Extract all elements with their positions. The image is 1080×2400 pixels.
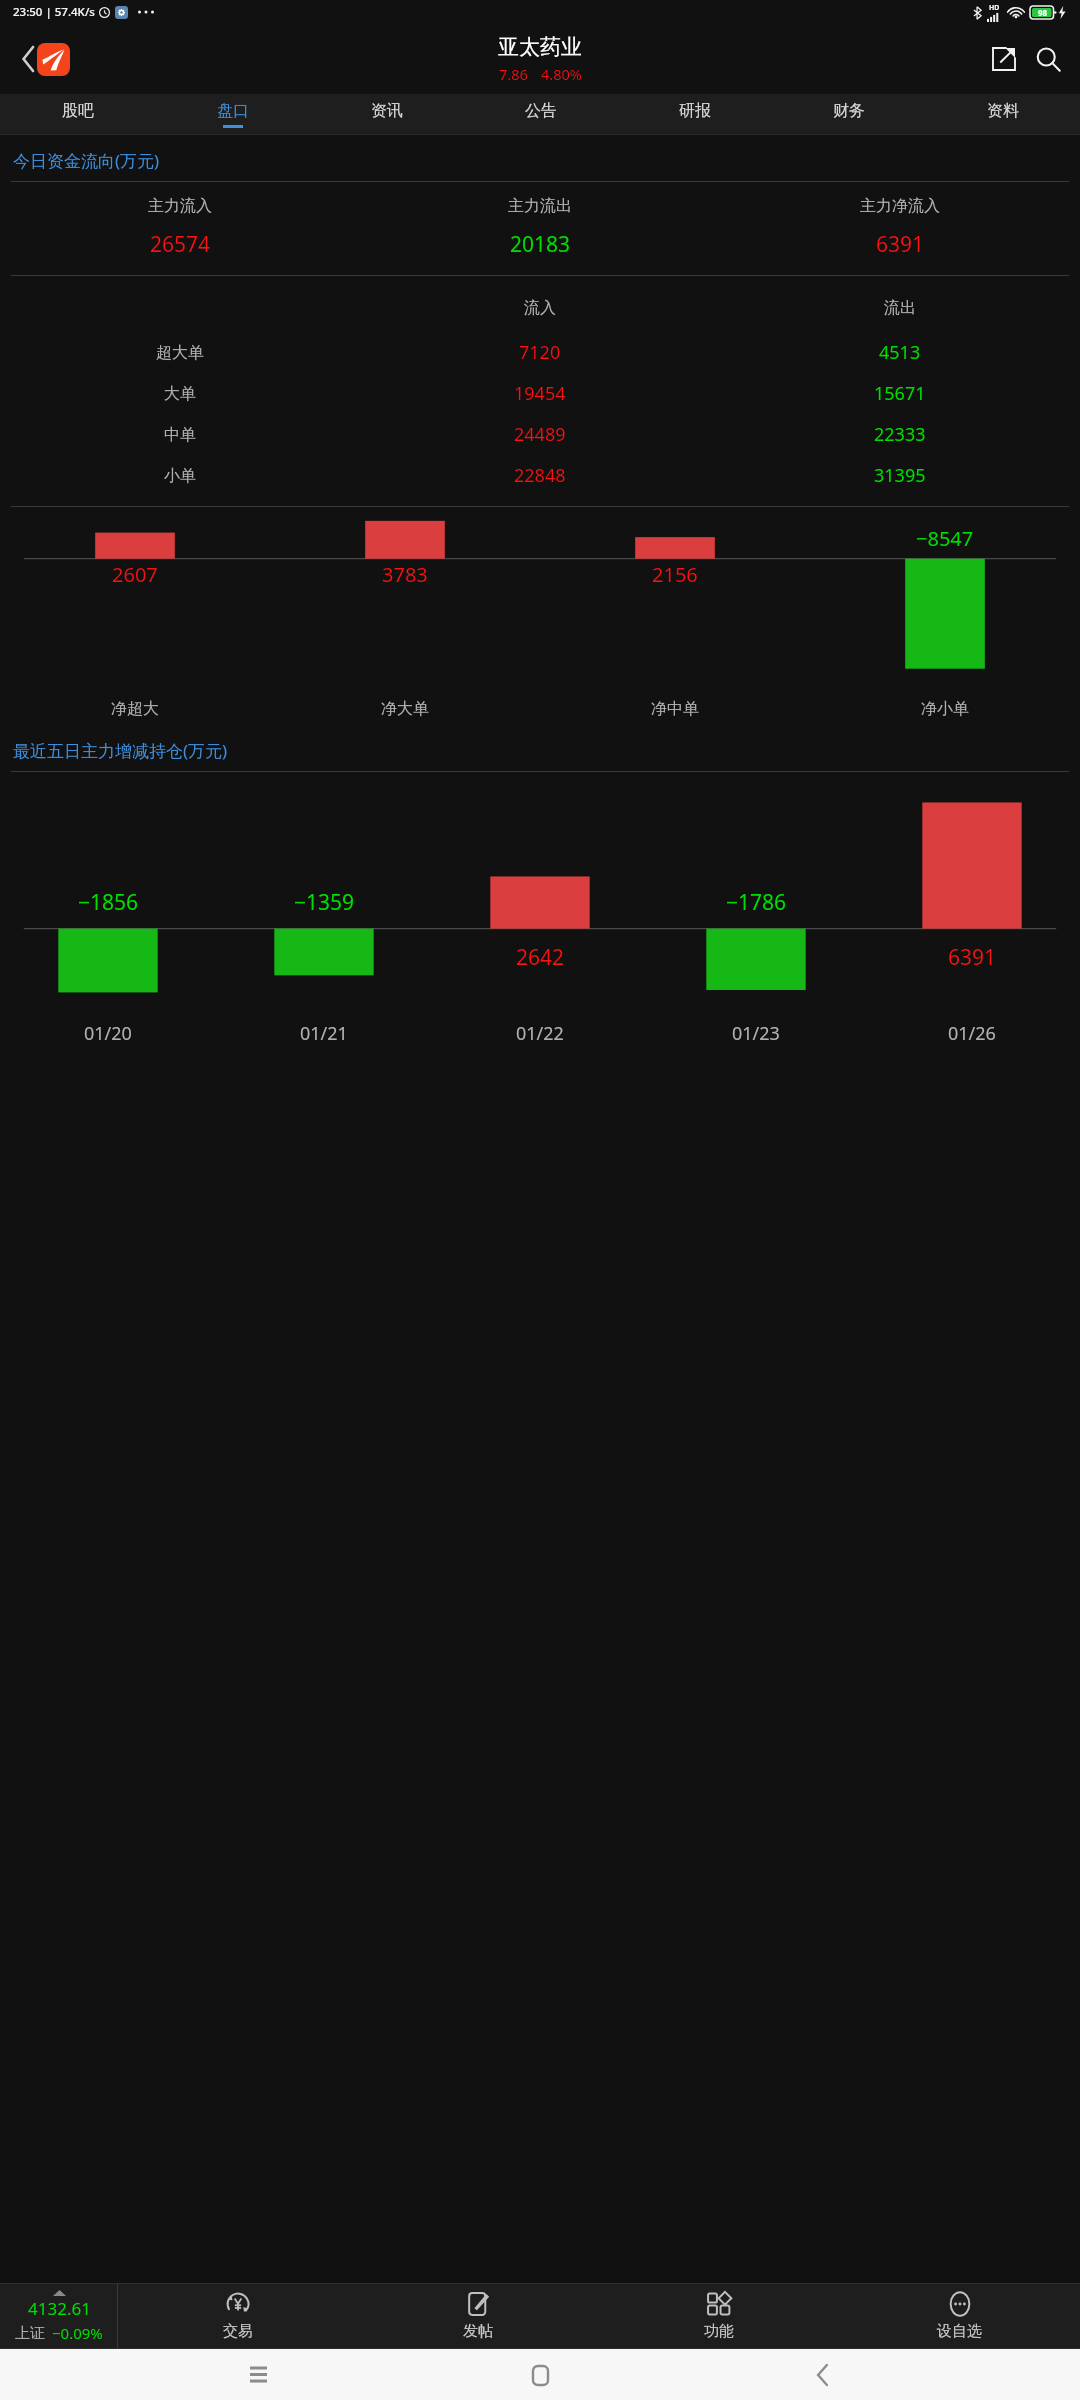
- staticText: 流出: [884, 298, 916, 318]
- button[interactable]: Back: [798, 2351, 846, 2399]
- button[interactable]: 发帖: [358, 2284, 598, 2348]
- staticText: 主力净流入: [860, 196, 940, 216]
- staticText: −1856: [78, 888, 139, 917]
- staticText: 15671: [874, 381, 926, 406]
- button[interactable]: 研报: [618, 94, 772, 134]
- staticText: 3783: [382, 561, 428, 588]
- staticText: 超大单: [156, 343, 204, 363]
- staticText: 01/21: [300, 1021, 348, 1046]
- staticText: 净大单: [381, 699, 429, 719]
- staticText: 净中单: [651, 699, 699, 719]
- button[interactable]: 资料: [926, 94, 1080, 134]
- staticText: 01/23: [732, 1021, 780, 1046]
- staticText: 01/22: [516, 1021, 564, 1046]
- staticText: 研报: [679, 101, 711, 121]
- staticText: 24489: [514, 422, 566, 447]
- button[interactable]: App logo: [37, 43, 70, 76]
- staticText: 最近五日主力增减持仓(万元): [13, 739, 228, 762]
- staticText: 31395: [874, 463, 926, 488]
- staticText: 资讯: [371, 101, 403, 121]
- button[interactable]: 交易: [118, 2284, 358, 2348]
- staticText: 交易: [223, 2322, 253, 2341]
- staticText: 小单: [164, 466, 196, 486]
- staticText: 22848: [514, 463, 566, 488]
- button[interactable]: 功能: [598, 2284, 839, 2348]
- staticText: 2607: [112, 561, 158, 588]
- staticText: 资料: [987, 101, 1019, 121]
- staticText: 4.80%: [541, 64, 582, 84]
- button[interactable]: 财务: [772, 94, 926, 134]
- staticText: 98: [1038, 7, 1048, 18]
- staticText: 发帖: [463, 2322, 493, 2341]
- button[interactable]: Recents: [234, 2351, 282, 2399]
- staticText: 6391: [876, 230, 925, 259]
- staticText: 4513: [879, 340, 921, 365]
- staticText: 4132.61: [28, 2297, 91, 2320]
- button[interactable]: Share: [982, 37, 1026, 81]
- staticText: 设自选: [937, 2322, 982, 2341]
- staticText: 财务: [833, 101, 865, 121]
- button[interactable]: Back: [6, 37, 50, 81]
- staticText: 7.86: [499, 64, 528, 84]
- staticText: 19454: [514, 381, 566, 406]
- staticText: 上证: [15, 2324, 45, 2343]
- staticText: 6391: [948, 943, 997, 972]
- button[interactable]: 资讯: [310, 94, 464, 134]
- staticText: 公告: [525, 101, 557, 121]
- button[interactable]: 4132.61: [0, 2284, 117, 2348]
- staticText: 23:50 | 57.4K/s: [13, 4, 95, 20]
- button[interactable]: 公告: [464, 94, 618, 134]
- staticText: 功能: [704, 2322, 734, 2341]
- button[interactable]: Search: [1026, 37, 1070, 81]
- staticText: −0.09%: [52, 2323, 103, 2343]
- staticText: 26574: [150, 230, 211, 259]
- staticText: 2156: [652, 561, 698, 588]
- staticText: −1786: [726, 888, 787, 917]
- button[interactable]: 股吧: [0, 94, 155, 134]
- staticText: 股吧: [62, 101, 94, 121]
- staticText: 大单: [164, 384, 196, 404]
- staticText: 亚太药业: [498, 34, 582, 60]
- staticText: 7120: [519, 340, 561, 365]
- staticText: −1359: [294, 888, 355, 917]
- staticText: −8547: [916, 525, 974, 552]
- staticText: 盘口: [217, 101, 249, 121]
- staticText: 20183: [510, 230, 571, 259]
- staticText: 01/26: [948, 1021, 996, 1046]
- button[interactable]: 盘口: [155, 94, 310, 134]
- button[interactable]: 设自选: [839, 2284, 1080, 2348]
- staticText: HD: [989, 3, 1000, 13]
- staticText: 2642: [516, 943, 565, 972]
- staticText: 中单: [164, 425, 196, 445]
- staticText: 主力流出: [508, 196, 572, 216]
- staticText: 流入: [524, 298, 556, 318]
- staticText: 主力流入: [148, 196, 212, 216]
- staticText: 22333: [874, 422, 926, 447]
- staticText: 净小单: [921, 699, 969, 719]
- button[interactable]: Home: [516, 2351, 564, 2399]
- staticText: 今日资金流向(万元): [13, 149, 160, 172]
- staticText: 01/20: [84, 1021, 132, 1046]
- staticText: 净超大: [111, 699, 159, 719]
